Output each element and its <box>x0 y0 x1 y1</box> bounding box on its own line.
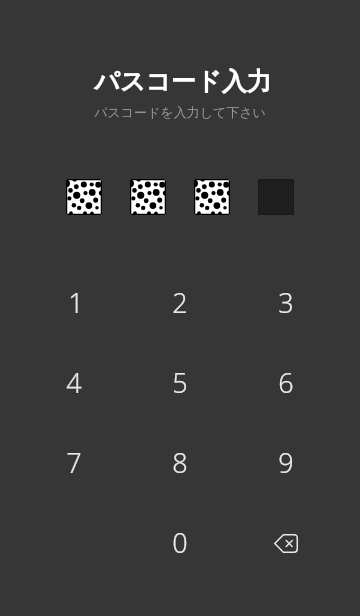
staticText: 4 <box>66 364 82 401</box>
staticText: パスコードを入力して下さい <box>94 104 266 120</box>
button[interactable]: 3 <box>233 262 339 342</box>
staticText: 5 <box>172 364 188 401</box>
staticText: 6 <box>278 364 294 401</box>
staticText: 2 <box>172 284 188 321</box>
button[interactable]: 7 <box>21 422 127 502</box>
button[interactable]: 4 <box>21 342 127 422</box>
button[interactable]: 8 <box>127 422 233 502</box>
staticText: 1 <box>68 284 84 321</box>
staticText: パスコード入力 <box>94 66 272 97</box>
staticText: 0 <box>172 524 188 561</box>
button[interactable]: 1 <box>21 262 127 342</box>
button[interactable]: 0 <box>127 502 233 582</box>
staticText: 7 <box>66 444 82 481</box>
button[interactable]: 2 <box>127 262 233 342</box>
button[interactable]: 5 <box>127 342 233 422</box>
staticText: 9 <box>278 444 294 481</box>
other: Passcode: 3 of 4 digits entered <box>66 179 294 215</box>
staticText: 3 <box>278 284 294 321</box>
button[interactable]: 9 <box>233 422 339 502</box>
button[interactable]: 6 <box>233 342 339 422</box>
staticText: 8 <box>172 444 188 481</box>
button[interactable]: Backspace, delete last digit <box>233 502 339 582</box>
